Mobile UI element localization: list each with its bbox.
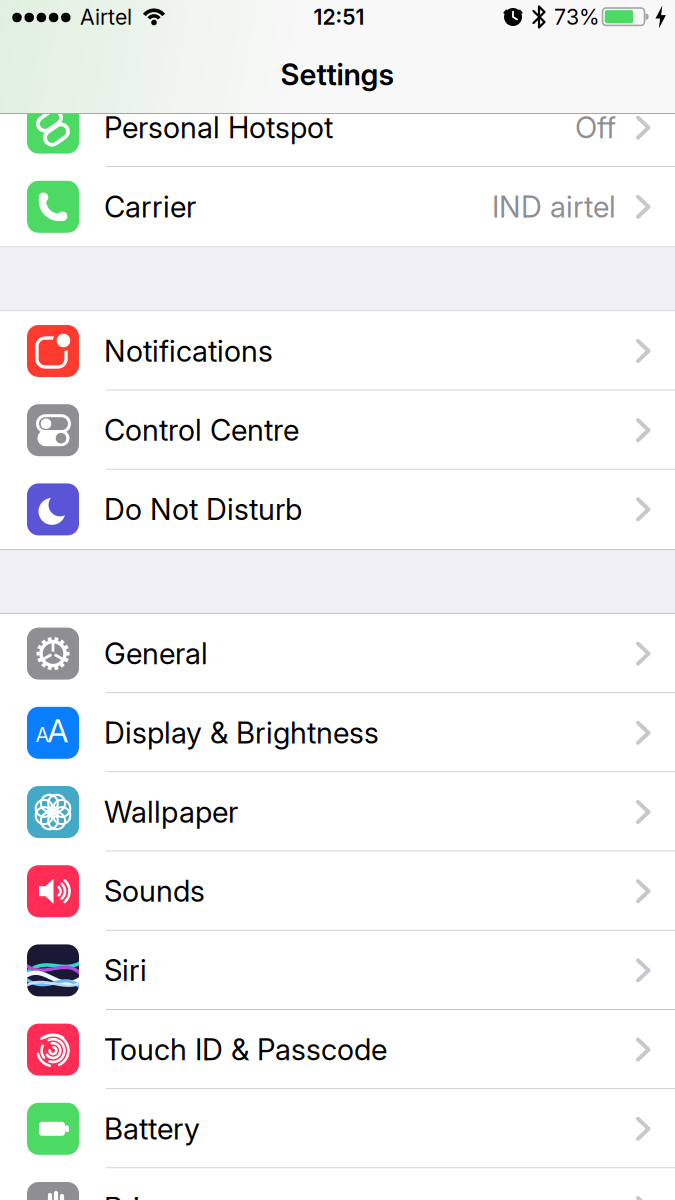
staticText: Privacy [104,1191,204,1200]
staticText: IND airtel [492,189,616,224]
staticText: Settings [280,57,394,92]
button[interactable]: General [0,614,675,693]
staticText: 73% [554,4,600,30]
button[interactable]: Wallpaper [0,772,675,852]
staticText: Display & Brightness [104,715,379,750]
button[interactable]: Privacy [0,1168,675,1200]
staticText: General [104,636,208,671]
staticText: Siri [104,953,147,988]
staticText: Notifications [104,334,273,368]
staticText: Control Centre [104,413,299,447]
staticText: Do Not Disturb [104,492,302,527]
button[interactable]: Carrier [0,167,675,246]
button[interactable]: Personal Hotspot [0,88,675,167]
button[interactable]: Control Centre [0,391,675,470]
button[interactable]: Sounds [0,852,675,931]
staticText: Off [575,110,616,145]
staticText: 12:51 [313,4,364,30]
button[interactable]: A [0,693,675,772]
button[interactable]: Notifications [0,311,675,391]
staticText: Sounds [104,874,205,908]
staticText: Wallpaper [104,795,238,829]
staticText: Airtel [80,4,132,30]
button[interactable]: Touch ID & Passcode [0,1010,675,1089]
button[interactable]: Siri [0,931,675,1010]
staticText: Personal Hotspot [104,110,333,145]
button[interactable]: Do Not Disturb [0,470,675,549]
staticText: Carrier [104,189,196,224]
staticText: Battery [104,1111,200,1146]
staticText: A [35,723,49,747]
staticText: Touch ID & Passcode [104,1032,387,1067]
staticText: A [47,712,68,749]
button[interactable]: Battery [0,1089,675,1168]
